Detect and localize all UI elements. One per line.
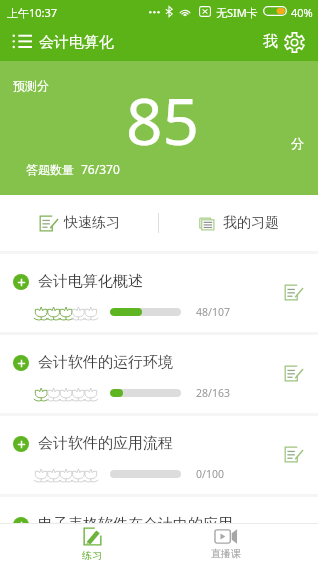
- staticText: 28/163: [196, 386, 230, 400]
- button[interactable]: Practice: [284, 446, 301, 463]
- staticText: 48/107: [196, 305, 230, 319]
- staticText: 我的习题: [223, 214, 279, 232]
- staticText: 练习: [82, 549, 102, 562]
- staticText: 会计电算化: [39, 33, 114, 52]
- staticText: 分: [291, 135, 304, 151]
- button[interactable]: 我的习题: [159, 195, 318, 251]
- button[interactable]: Practice: [284, 365, 301, 382]
- button[interactable]: 练习: [66, 523, 118, 566]
- button[interactable]: Settings: [283, 24, 306, 61]
- staticText: 上午10:37: [7, 5, 58, 20]
- staticText: 电子表格软件在会计中的应用: [38, 515, 233, 534]
- staticText: 会计软件的应用流程: [38, 434, 173, 453]
- button[interactable]: 会计软件的运行环境: [0, 335, 318, 413]
- staticText: 会计软件的运行环境: [38, 353, 173, 372]
- button[interactable]: 电子表格软件在会计中的应用: [0, 497, 318, 523]
- staticText: 答题数量: [26, 162, 74, 177]
- staticText: 快速练习: [64, 214, 120, 232]
- staticText: 0/100: [196, 467, 224, 481]
- button[interactable]: 我: [258, 24, 282, 61]
- staticText: 0/100: [196, 548, 224, 562]
- staticText: 无SIM卡: [216, 5, 258, 20]
- other: Menu: [13, 34, 32, 47]
- staticText: 预测分: [13, 78, 49, 93]
- staticText: 我: [263, 32, 278, 51]
- button[interactable]: Menu: [0, 24, 124, 61]
- staticText: 85: [126, 77, 200, 164]
- button[interactable]: 会计电算化概述: [0, 254, 318, 332]
- staticText: 76/370: [81, 161, 120, 177]
- staticText: 40%: [291, 5, 313, 20]
- button[interactable]: 快速练习: [0, 195, 158, 251]
- staticText: 会计电算化概述: [38, 272, 143, 291]
- button[interactable]: 会计软件的应用流程: [0, 416, 318, 494]
- button[interactable]: 直播课: [200, 523, 252, 566]
- staticText: 直播课: [211, 547, 241, 560]
- button[interactable]: Practice: [284, 284, 301, 301]
